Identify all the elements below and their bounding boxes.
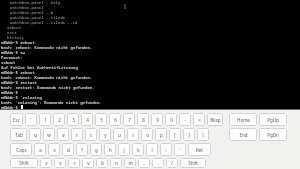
staticText: PgDn xyxy=(267,132,279,138)
staticText: Caps xyxy=(16,147,27,153)
button[interactable]: Caps xyxy=(10,143,32,156)
staticText: 5 xyxy=(100,117,103,123)
button[interactable]: i xyxy=(127,128,139,141)
button[interactable]: 8 xyxy=(137,113,149,126)
staticText: m0bbb~$ reboot xyxy=(1,70,35,75)
button[interactable]: j xyxy=(118,143,130,156)
button[interactable]: b xyxy=(96,158,108,168)
staticText: a xyxy=(39,147,42,153)
button[interactable]: f xyxy=(76,143,88,156)
button[interactable]: Tab xyxy=(10,128,27,141)
staticText: bash: reboot: Kommando nicht gefunden. xyxy=(1,75,93,80)
staticText: watchbox-panel --tilede xyxy=(10,15,66,20)
button[interactable]: l xyxy=(146,143,158,156)
button[interactable]: y xyxy=(99,128,111,141)
staticText: 3 xyxy=(72,117,75,123)
staticText: i xyxy=(132,132,134,138)
button[interactable]: 0 xyxy=(165,113,177,126)
button[interactable]: 3 xyxy=(67,113,79,126)
button[interactable]: 6 xyxy=(109,113,121,126)
button[interactable]: e xyxy=(57,128,69,141)
staticText: 8 xyxy=(142,117,145,123)
staticText: watchbox-panel xyxy=(10,5,44,10)
button[interactable]: r xyxy=(71,128,83,141)
staticText: q xyxy=(34,132,37,138)
button[interactable]: v xyxy=(82,158,94,168)
button[interactable]: / xyxy=(166,158,178,168)
staticText: 2 xyxy=(58,117,61,123)
button[interactable]: a xyxy=(34,143,46,156)
staticText: 0 xyxy=(170,117,173,123)
staticText: Bksp xyxy=(210,117,221,123)
button[interactable]: \ xyxy=(197,128,209,141)
staticText: m0bbb~$ xyxy=(1,105,21,109)
button[interactable]: t xyxy=(85,128,97,141)
button[interactable]: ` xyxy=(25,113,37,126)
button[interactable]: d xyxy=(62,143,74,156)
staticText: e xyxy=(62,132,65,138)
staticText: = xyxy=(198,117,201,123)
button[interactable]: Esc xyxy=(10,113,23,126)
button[interactable]: . xyxy=(152,158,164,168)
button[interactable]: 5 xyxy=(95,113,107,126)
staticText: w xyxy=(47,132,51,138)
staticText: reboot xyxy=(1,60,16,65)
button[interactable]: 4 xyxy=(81,113,93,126)
staticText: ` xyxy=(30,117,32,123)
button[interactable]: Shift xyxy=(10,158,38,168)
button[interactable]: = xyxy=(193,113,205,126)
staticText: ' xyxy=(179,147,181,153)
button[interactable]: c xyxy=(68,158,80,168)
button[interactable]: u xyxy=(113,128,125,141)
button[interactable]: Bksp xyxy=(207,113,223,126)
button[interactable]: Ret xyxy=(188,143,211,156)
staticText: y xyxy=(104,132,107,138)
staticText: m0bbb~$ 'relaxing xyxy=(1,95,42,100)
button[interactable]: s xyxy=(48,143,60,156)
button[interactable]: , xyxy=(138,158,150,168)
button[interactable]: [ xyxy=(169,128,181,141)
button[interactable]: ] xyxy=(183,128,195,141)
button[interactable]: Home xyxy=(229,113,257,126)
button[interactable]: 7 xyxy=(123,113,135,126)
button[interactable]: p xyxy=(155,128,167,141)
button[interactable]: Terminal output xyxy=(0,0,300,109)
button[interactable]: w xyxy=(43,128,55,141)
button[interactable]: k xyxy=(132,143,144,156)
staticText: 9 xyxy=(156,117,159,123)
staticText: 6 xyxy=(114,117,117,123)
staticText: r xyxy=(76,132,78,138)
staticText: PgUp xyxy=(267,117,279,123)
button[interactable]: PgDn xyxy=(259,128,287,141)
button[interactable]: n xyxy=(110,158,122,168)
button[interactable]: 9 xyxy=(151,113,163,126)
staticText: Ret xyxy=(196,147,203,153)
button[interactable]: q xyxy=(29,128,41,141)
button[interactable]: ; xyxy=(160,143,172,156)
button[interactable]: - xyxy=(179,113,191,126)
button[interactable]: ' xyxy=(174,143,186,156)
staticText: reboot xyxy=(7,25,22,30)
button[interactable]: End xyxy=(229,128,257,141)
staticText: u xyxy=(118,132,121,138)
staticText: / xyxy=(171,160,173,166)
button[interactable]: PgUp xyxy=(259,113,287,126)
button[interactable]: h xyxy=(104,143,116,156)
staticText: c xyxy=(73,160,76,166)
button[interactable]: x xyxy=(54,158,66,168)
button[interactable]: m xyxy=(124,158,136,168)
staticText: k xyxy=(137,147,140,153)
button[interactable]: Shift xyxy=(180,158,206,168)
button[interactable]: z xyxy=(40,158,52,168)
button[interactable]: o xyxy=(141,128,153,141)
staticText: \ xyxy=(202,132,204,138)
button[interactable]: 2 xyxy=(53,113,65,126)
staticText: Esc xyxy=(13,117,20,123)
staticText: exit xyxy=(7,30,17,35)
staticText: watchbox-panel --b xyxy=(10,10,54,15)
button[interactable]: 1 xyxy=(39,113,51,126)
button[interactable]: g xyxy=(90,143,102,156)
staticText: bash: restart: Kommando nicht gefunden. xyxy=(1,85,95,90)
staticText: ; xyxy=(165,147,167,153)
staticText: End xyxy=(239,132,248,138)
